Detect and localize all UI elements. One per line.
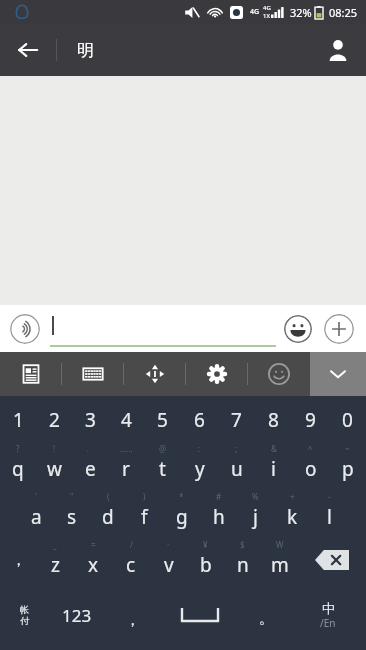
button[interactable]: Space bbox=[158, 584, 242, 646]
button[interactable]: ~ bbox=[329, 440, 366, 488]
button[interactable]: _ bbox=[36, 536, 74, 584]
staticText: % bbox=[252, 491, 259, 502]
staticText: ? bbox=[16, 443, 20, 454]
button[interactable]: 。 bbox=[242, 584, 290, 646]
staticText: 9 bbox=[305, 407, 316, 433]
staticText: …… bbox=[120, 443, 133, 454]
staticText: * bbox=[179, 491, 184, 502]
staticText: ' bbox=[35, 491, 37, 502]
button[interactable]: ¥ bbox=[187, 536, 224, 584]
staticText: / bbox=[130, 539, 133, 550]
button[interactable]: 8 bbox=[255, 400, 292, 440]
button[interactable]: 1 bbox=[0, 400, 36, 440]
staticText: ; bbox=[235, 443, 238, 454]
button[interactable]: 3 bbox=[72, 400, 108, 440]
staticText: n bbox=[237, 552, 249, 578]
staticText: 中 bbox=[322, 600, 335, 616]
staticText: 7 bbox=[231, 407, 242, 433]
staticText: k bbox=[287, 504, 298, 530]
button[interactable]: ! bbox=[36, 440, 72, 488]
button[interactable]: Profile bbox=[310, 24, 366, 76]
staticText: l bbox=[327, 504, 332, 530]
staticText: f bbox=[141, 504, 148, 530]
button[interactable]: Clipboard bbox=[0, 352, 62, 396]
button[interactable]: · bbox=[150, 536, 187, 584]
button[interactable]: ; bbox=[218, 440, 255, 488]
staticText: ! bbox=[53, 443, 56, 454]
button[interactable]: ( bbox=[90, 488, 126, 536]
staticText: · bbox=[167, 539, 170, 550]
staticText: ¥ bbox=[203, 539, 208, 550]
staticText: 4 bbox=[121, 407, 132, 433]
button[interactable]: & bbox=[255, 440, 292, 488]
button[interactable]: ? bbox=[0, 440, 36, 488]
button[interactable] bbox=[50, 305, 276, 352]
staticText: + bbox=[290, 491, 295, 502]
button[interactable]: 9 bbox=[292, 400, 329, 440]
button[interactable]: - bbox=[311, 488, 348, 536]
button[interactable]: 4 bbox=[108, 400, 144, 440]
button[interactable]: W bbox=[261, 536, 298, 584]
staticText: " bbox=[70, 491, 74, 502]
button[interactable]: : bbox=[181, 440, 218, 488]
button[interactable]: Hide keyboard bbox=[310, 352, 366, 396]
staticText: e bbox=[85, 456, 96, 482]
button[interactable]: Move cursor bbox=[124, 352, 186, 396]
button[interactable]: " bbox=[54, 488, 90, 536]
staticText: ， bbox=[11, 551, 26, 570]
button[interactable]: Keyboard layout bbox=[62, 352, 124, 396]
staticText: _ bbox=[53, 539, 57, 550]
button[interactable]: ' bbox=[18, 488, 54, 536]
button[interactable]: $ bbox=[224, 536, 261, 584]
button[interactable]: 7 bbox=[218, 400, 255, 440]
staticText: 4G bbox=[250, 7, 260, 17]
staticText: $ bbox=[240, 539, 245, 550]
button[interactable]: …… bbox=[108, 440, 144, 488]
staticText: g bbox=[176, 504, 188, 530]
button[interactable]: Backspace bbox=[298, 536, 366, 584]
button[interactable]: 明 bbox=[57, 24, 310, 76]
button[interactable]: 6 bbox=[181, 400, 218, 440]
button[interactable]: 2 bbox=[36, 400, 72, 440]
staticText: ) bbox=[143, 491, 146, 502]
staticText: 1 bbox=[13, 407, 24, 433]
button[interactable]: Enter bbox=[290, 584, 366, 646]
button[interactable]: Voice message bbox=[10, 314, 40, 344]
button[interactable]: Stickers bbox=[248, 352, 310, 396]
button[interactable]: 0 bbox=[329, 400, 366, 440]
staticText: r bbox=[122, 456, 130, 482]
button[interactable]: 5 bbox=[144, 400, 181, 440]
staticText: ^ bbox=[308, 443, 313, 454]
staticText: ， bbox=[125, 611, 140, 630]
button[interactable]: ^ bbox=[292, 440, 329, 488]
staticText: x bbox=[88, 552, 99, 578]
button[interactable]: Settings bbox=[186, 352, 248, 396]
button[interactable]: Back bbox=[0, 24, 56, 76]
button[interactable]: ， bbox=[106, 584, 158, 646]
button[interactable]: # bbox=[200, 488, 237, 536]
button[interactable]: Emoji bbox=[284, 315, 312, 343]
staticText: 2 bbox=[49, 407, 60, 433]
staticText: & bbox=[271, 443, 277, 454]
button[interactable]: ， bbox=[0, 536, 36, 584]
button[interactable]: = bbox=[74, 536, 112, 584]
staticText: 0 bbox=[342, 407, 353, 433]
staticText: s bbox=[67, 504, 77, 530]
button[interactable]: ) bbox=[126, 488, 163, 536]
button[interactable]: / bbox=[112, 536, 150, 584]
button[interactable]: @ bbox=[144, 440, 181, 488]
staticText: j bbox=[253, 504, 258, 530]
button[interactable]: 、 bbox=[72, 440, 108, 488]
button[interactable]: * bbox=[163, 488, 200, 536]
button[interactable]: 帐 bbox=[0, 584, 48, 646]
button[interactable]: + bbox=[274, 488, 311, 536]
staticText: 6 bbox=[194, 407, 205, 433]
staticText: 。 bbox=[259, 610, 273, 628]
staticText: : bbox=[198, 443, 201, 454]
button[interactable]: 123 bbox=[48, 584, 106, 646]
staticText: W bbox=[276, 539, 284, 550]
staticText: o bbox=[305, 456, 317, 482]
button[interactable]: More options bbox=[324, 314, 354, 344]
staticText: # bbox=[216, 491, 222, 502]
button[interactable]: % bbox=[237, 488, 274, 536]
